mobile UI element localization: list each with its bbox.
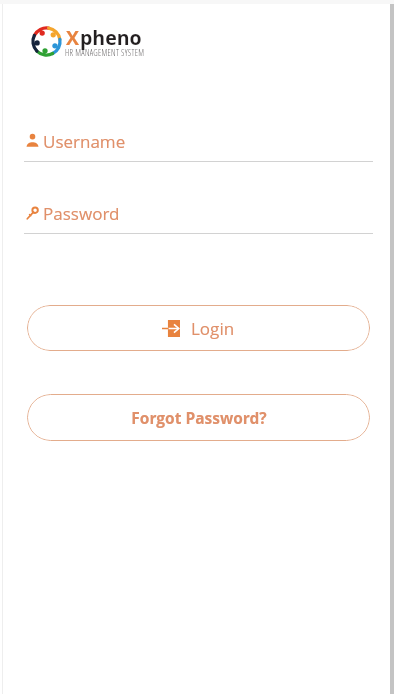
staticText: Password — [43, 202, 120, 225]
staticText: HR MANAGEMENT SYSTEM — [65, 47, 145, 58]
button[interactable]: Login — [27, 305, 370, 351]
staticText: Login — [191, 317, 235, 340]
other: User — [26, 133, 39, 147]
staticText: Username — [43, 130, 126, 153]
staticText: Forgot Password? — [131, 407, 267, 428]
button[interactable]: Password — [24, 200, 373, 234]
other: Xpheno logo — [31, 26, 62, 57]
staticText: pheno — [80, 24, 142, 51]
button[interactable]: Username — [24, 128, 373, 162]
other: Key — [26, 206, 39, 220]
button[interactable]: Forgot Password? — [27, 394, 370, 441]
staticText: X — [66, 24, 80, 51]
